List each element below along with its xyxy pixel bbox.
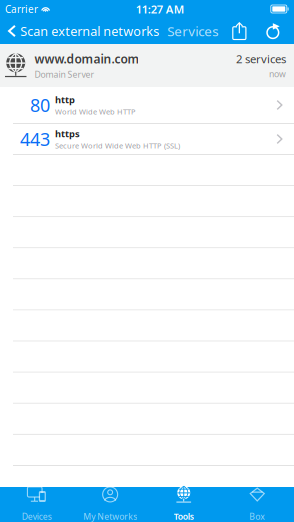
staticText: Domain Server (34, 69, 94, 80)
button[interactable]: Tools (147, 487, 220, 522)
staticText: Devices (22, 511, 52, 522)
staticText: Tools (174, 511, 194, 522)
staticText: now (269, 68, 286, 80)
staticText: World Wide Web HTTP (55, 107, 136, 117)
staticText: Scan external networks (20, 23, 159, 39)
button[interactable]: Box (220, 487, 294, 522)
staticText: 80 (30, 93, 50, 117)
staticText: 11:27 AM (136, 1, 185, 16)
button[interactable]: 80 (0, 87, 294, 124)
staticText: www.domain.com (34, 51, 139, 67)
staticText: http (55, 93, 75, 106)
staticText: 443 (20, 127, 50, 151)
button[interactable]: Share (226, 18, 252, 44)
button[interactable]: Scan external networks (0, 18, 161, 44)
staticText: Carrier (5, 2, 38, 16)
button[interactable]: Devices (0, 487, 73, 522)
staticText: Box (249, 511, 265, 522)
staticText: https (55, 127, 80, 140)
button[interactable]: Refresh (260, 18, 286, 44)
staticText: Services (167, 22, 218, 40)
staticText: 2 services (236, 51, 286, 66)
staticText: Secure World Wide Web HTTP (SSL) (55, 141, 180, 151)
button[interactable]: 443 (0, 124, 294, 155)
button[interactable]: My Networks (73, 487, 147, 522)
staticText: My Networks (83, 511, 137, 522)
